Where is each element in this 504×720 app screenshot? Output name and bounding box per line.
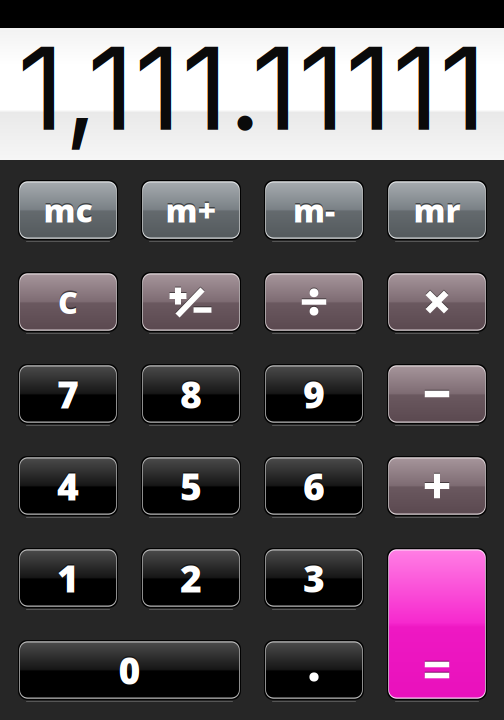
staticText: 1,111.11111 [17, 19, 486, 157]
staticText: m+ [165, 189, 216, 231]
button[interactable]: C [18, 272, 118, 332]
button[interactable]: m+ [141, 180, 241, 240]
button[interactable]: 8 [141, 364, 241, 424]
staticText: 4 [57, 461, 79, 511]
staticText: 8 [180, 369, 202, 419]
staticText: 6 [303, 461, 325, 511]
staticText: 2 [180, 552, 202, 601]
button[interactable]: 1 [18, 548, 118, 608]
staticText: mr [413, 187, 460, 230]
button[interactable]: 9 [264, 364, 364, 424]
button[interactable]: Plus [387, 456, 487, 516]
button[interactable]: mc [18, 180, 118, 240]
button[interactable]: Decimal point [264, 640, 364, 700]
staticText: C [58, 282, 78, 322]
staticText: 7 [57, 368, 79, 417]
staticText: 1 [57, 552, 79, 601]
button[interactable]: 0 [18, 640, 241, 700]
staticText: 0 [118, 645, 140, 695]
button[interactable]: Multiply [387, 272, 487, 332]
staticText: mc [43, 187, 92, 230]
button[interactable]: 2 [141, 548, 241, 608]
staticText: 9 [303, 369, 325, 419]
staticText: 5 [180, 461, 202, 511]
staticText: m- [293, 189, 335, 231]
staticText: 3 [303, 553, 325, 603]
button[interactable]: 4 [18, 456, 118, 516]
button[interactable]: Divide [264, 272, 364, 332]
staticText: m+ [165, 187, 216, 230]
staticText: 2 [180, 553, 202, 603]
staticText: m- [293, 187, 335, 230]
button[interactable]: m- [264, 180, 364, 240]
staticText: C [58, 280, 78, 321]
button[interactable]: 3 [264, 548, 364, 608]
staticText: 8 [180, 368, 202, 417]
staticText: mr [413, 189, 460, 231]
button[interactable]: Equals [387, 548, 487, 700]
button[interactable]: 6 [264, 456, 364, 516]
staticText: 1 [57, 553, 79, 603]
button[interactable]: Minus [387, 364, 487, 424]
staticText: mc [43, 189, 92, 231]
staticText: 4 [57, 460, 79, 509]
staticText: 5 [180, 460, 202, 509]
staticText: 9 [303, 368, 325, 417]
button[interactable]: Plus minus [141, 272, 241, 332]
button[interactable]: 5 [141, 456, 241, 516]
staticText: 0 [118, 644, 140, 693]
staticText: 3 [303, 552, 325, 601]
button[interactable]: mr [387, 180, 487, 240]
staticText: 6 [303, 460, 325, 509]
button[interactable]: 7 [18, 364, 118, 424]
staticText: 7 [57, 369, 79, 419]
